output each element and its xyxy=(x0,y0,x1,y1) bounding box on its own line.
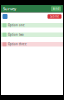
staticText: Submit xyxy=(50,15,59,18)
staticText: Option one xyxy=(8,23,25,27)
button[interactable]: Submit xyxy=(47,14,61,19)
staticText: Option two xyxy=(8,33,24,36)
staticText: Survey xyxy=(3,6,16,11)
button[interactable]: Send xyxy=(51,6,61,11)
staticText: Send xyxy=(52,7,59,10)
staticText: Option three xyxy=(8,42,27,46)
